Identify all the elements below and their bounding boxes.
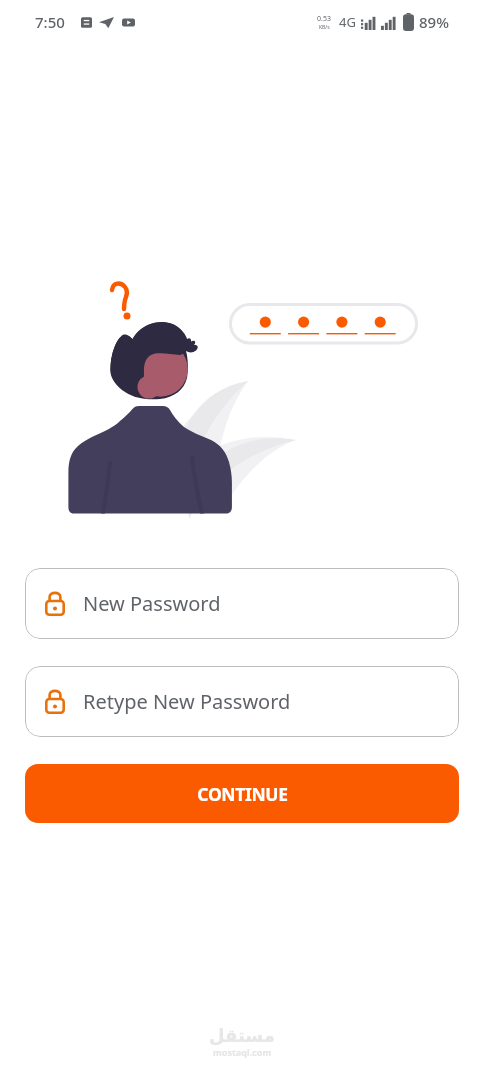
- staticText: New Password: [83, 590, 221, 617]
- staticText: 0.53: [317, 14, 331, 24]
- staticText: 89%: [419, 12, 449, 32]
- staticText: 4G: [339, 13, 356, 31]
- staticText: 7:50: [35, 12, 65, 32]
- button[interactable]: CONTINUE: [25, 764, 459, 823]
- staticText: Retype New Password: [83, 688, 291, 715]
- button[interactable]: New Password: [25, 568, 459, 639]
- staticText: CONTINUE: [197, 782, 288, 806]
- staticText: مستقل: [209, 1025, 275, 1046]
- staticText: KB/s: [319, 24, 330, 31]
- staticText: mostaql.com: [213, 1046, 272, 1058]
- button[interactable]: Retype New Password: [25, 666, 459, 737]
